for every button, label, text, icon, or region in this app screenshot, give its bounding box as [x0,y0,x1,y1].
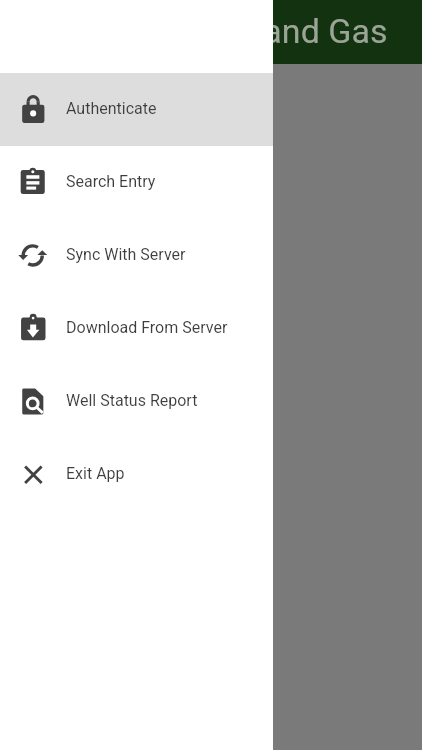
button[interactable]: Exit App [0,438,273,511]
staticText: Download From Server [66,318,228,337]
button[interactable]: Download From Server [0,292,273,365]
button[interactable]: Authenticate [0,73,273,146]
staticText: Well Status Report [66,391,198,410]
button[interactable]: Search Entry [0,146,273,219]
staticText: Exit App [66,464,125,483]
staticText: Authenticate [66,99,157,118]
staticText: Sync With Server [66,245,186,264]
button[interactable]: Close navigation drawer [0,64,422,750]
staticText: Search Entry [66,172,156,191]
button[interactable]: Well Status Report [0,365,273,438]
button[interactable]: Sync With Server [0,219,273,292]
staticText: Oil and Gas [215,11,388,51]
